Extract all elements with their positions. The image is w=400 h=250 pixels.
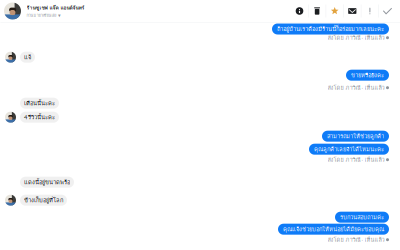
- staticText: ร้านซูเชฟ แจ๊ค แอนด์จันทร์: [26, 4, 84, 12]
- staticText: รบกวนสอบถามค่ะ: [340, 213, 384, 222]
- staticText: ขายหรือยังคะ: [351, 71, 384, 80]
- staticText: 4 รีวิวนี้นะคะ: [24, 113, 55, 122]
- staticText: เดือนนี้นะคะ: [24, 99, 55, 108]
- staticText: สามารถมาให้ช่วยลูกค้า: [327, 132, 384, 141]
- staticText: กวนมายาเซียนเฮง: [26, 12, 56, 18]
- staticText: คุณแจ้งช่วยบอกให้หน่อยได้ม้ยคะขอบคุณ: [283, 225, 384, 234]
- button[interactable]: Details: [291, 0, 308, 22]
- button[interactable]: Follow up: [326, 0, 343, 22]
- staticText: ถ้าอยู่บ้านเราต้องมีร้านนี้ก็อร่อยมากเลย…: [277, 24, 384, 33]
- button[interactable]: Report: [361, 0, 378, 22]
- staticText: ส่งโดย ภาวิณี · เห็นแล้ว: [327, 155, 384, 164]
- button[interactable]: Delete: [309, 0, 326, 22]
- staticText: คุณลูกค้าเลยจำได้ไหมนะคะ: [314, 145, 384, 154]
- staticText: ส่งโดย ภาวิณี · เห็นแล้ว: [327, 83, 384, 92]
- staticText: ส่งโดย ภาวิณี · เห็นแล้ว: [327, 33, 384, 42]
- staticText: ข้างเก็บอยู่ที่โลก: [24, 196, 63, 205]
- staticText: ▾: [58, 12, 61, 18]
- button[interactable]: Mark unread: [344, 0, 361, 22]
- staticText: แดงนี้อยู่ขนาดพร้อ: [24, 178, 70, 187]
- staticText: ส่งโดย ภาวิณี · เห็นแล้ว: [327, 235, 384, 244]
- staticText: แจ้: [24, 53, 31, 62]
- button[interactable]: Mark done: [379, 0, 396, 22]
